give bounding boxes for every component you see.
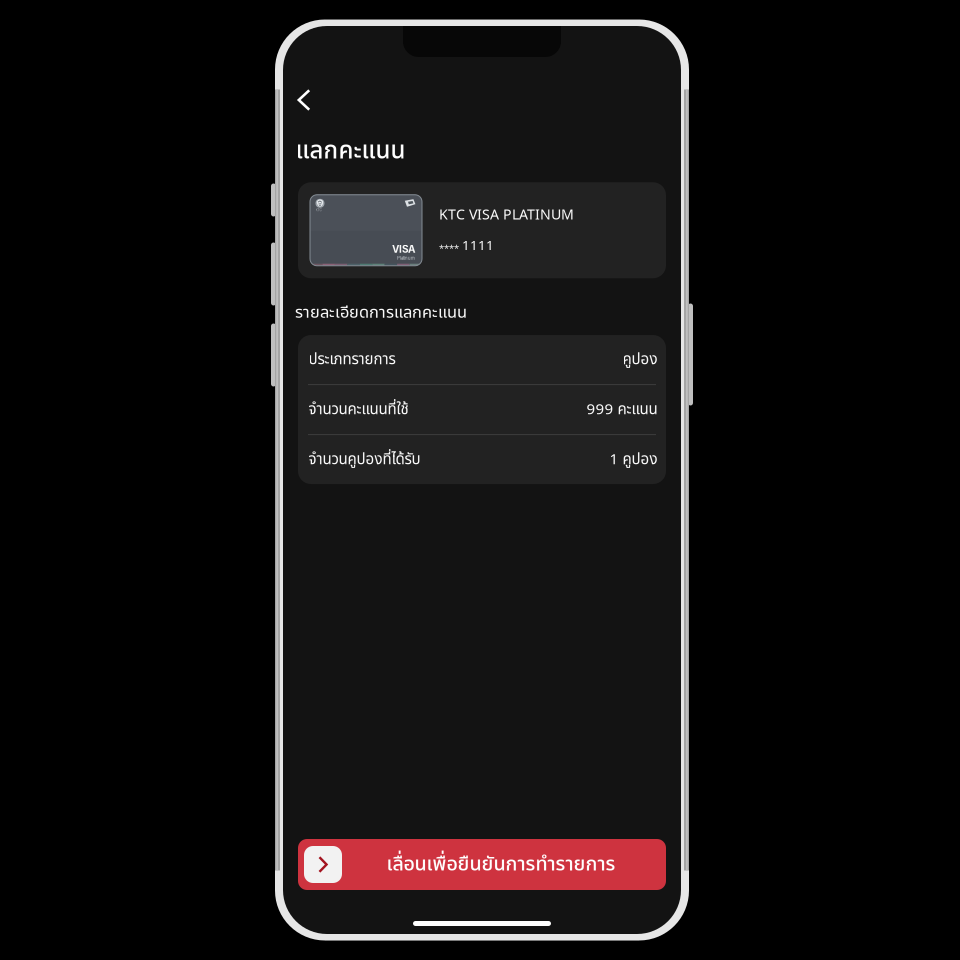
staticText: ประเภทรายการ (308, 348, 395, 371)
button[interactable]: Back (282, 78, 326, 122)
staticText: KTC (315, 208, 321, 212)
staticText: จำนวนคะแนนที่ใช้ (308, 398, 408, 421)
staticText: จำนวนคูปองที่ได้รับ (308, 448, 420, 471)
staticText: VISA (392, 243, 415, 255)
staticText: รายละเอียดการแลกคะแนน (295, 300, 467, 325)
staticText: แลกคะแนน (295, 133, 405, 169)
staticText: KTC VISA PLATINUM (439, 204, 574, 226)
button[interactable]: เลื่อนเพื่อยืนยันการทำรายการ (298, 839, 666, 890)
staticText: 1111 (462, 236, 494, 256)
staticText: เลื่อนเพื่อยืนยันการทำรายการ (386, 850, 615, 879)
staticText: 1 คูปอง (609, 448, 657, 471)
staticText: **** (439, 242, 459, 256)
button[interactable]: KTC (298, 182, 666, 278)
staticText: คูปอง (622, 348, 657, 371)
staticText: Platinum (397, 256, 415, 261)
staticText: 999 คะแนน (586, 398, 657, 421)
